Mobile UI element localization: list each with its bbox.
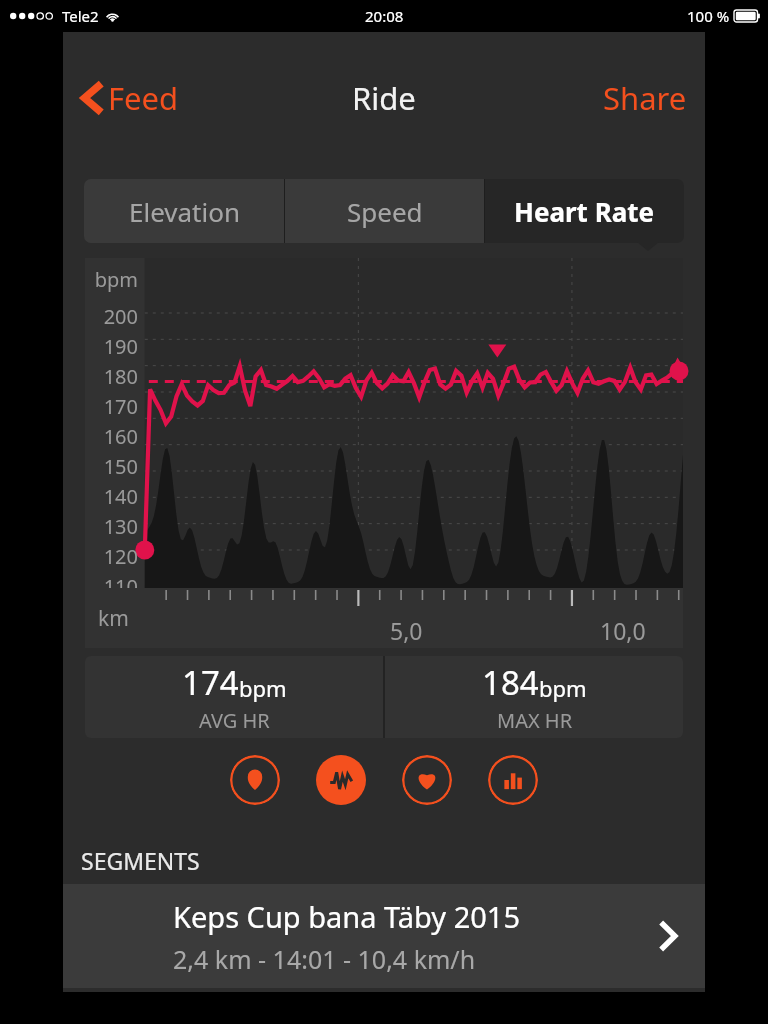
button[interactable]: Elevation [84, 179, 284, 243]
staticText: Keps Cup bana Täby 2015 [173, 897, 521, 936]
button[interactable]: Share [603, 77, 687, 119]
staticText: MAX HR [497, 707, 573, 734]
staticText: 160 [85, 423, 138, 450]
button[interactable]: Analysis [316, 755, 366, 805]
staticText: 10,0 [600, 615, 646, 646]
button[interactable]: Speed [285, 179, 484, 243]
staticText: 180 [85, 363, 138, 390]
staticText: SEGMENTS [81, 845, 200, 876]
button[interactable]: Heart rate [402, 755, 452, 805]
staticText: 130 [85, 513, 138, 540]
staticText: 184 [482, 660, 539, 705]
staticText: 200 [85, 303, 138, 330]
staticText: AVG HR [199, 707, 270, 734]
staticText: 150 [85, 453, 138, 480]
staticText: 140 [85, 483, 138, 510]
staticText: km [98, 604, 129, 633]
button[interactable]: Heart Rate [485, 179, 684, 243]
staticText: bpm [539, 673, 587, 703]
staticText: bpm [239, 673, 287, 703]
button[interactable]: 184 [385, 656, 683, 738]
staticText: Speed [347, 194, 423, 229]
staticText: bpm [85, 266, 138, 293]
staticText: 2,4 km - 14:01 - 10,4 km/h [173, 942, 476, 976]
button[interactable]: 174 [85, 656, 383, 738]
staticText: Feed [108, 77, 179, 119]
button[interactable]: Feed [81, 77, 179, 119]
staticText: Heart Rate [514, 194, 655, 229]
staticText: 100 % [687, 6, 730, 26]
staticText: 190 [85, 333, 138, 360]
staticText: 110 [85, 573, 138, 588]
staticText: Elevation [129, 194, 240, 229]
staticText: Ride [352, 77, 416, 119]
staticText: 170 [85, 393, 138, 420]
button[interactable]: Map [230, 755, 280, 805]
staticText: 120 [85, 543, 138, 570]
staticText: 174 [182, 660, 239, 705]
staticText: Tele2 [62, 6, 99, 26]
staticText: 5,0 [390, 615, 423, 646]
button[interactable]: Splits [488, 755, 538, 805]
staticText: 20:08 [365, 6, 404, 26]
button[interactable]: Keps Cup bana Täby 2015 [63, 884, 705, 988]
